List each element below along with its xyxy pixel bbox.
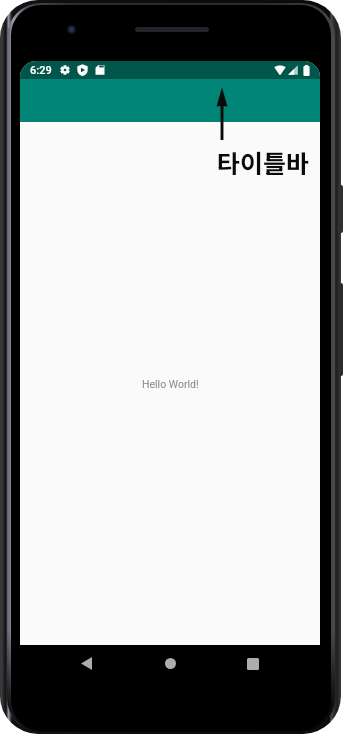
staticText: 타이틀바 (217, 144, 310, 180)
button[interactable]: Recent apps (233, 644, 273, 683)
staticText: Hello World! (142, 378, 199, 390)
button[interactable]: Home (150, 644, 190, 683)
button[interactable]: Back (66, 644, 106, 683)
staticText: 6:29 (30, 64, 52, 77)
